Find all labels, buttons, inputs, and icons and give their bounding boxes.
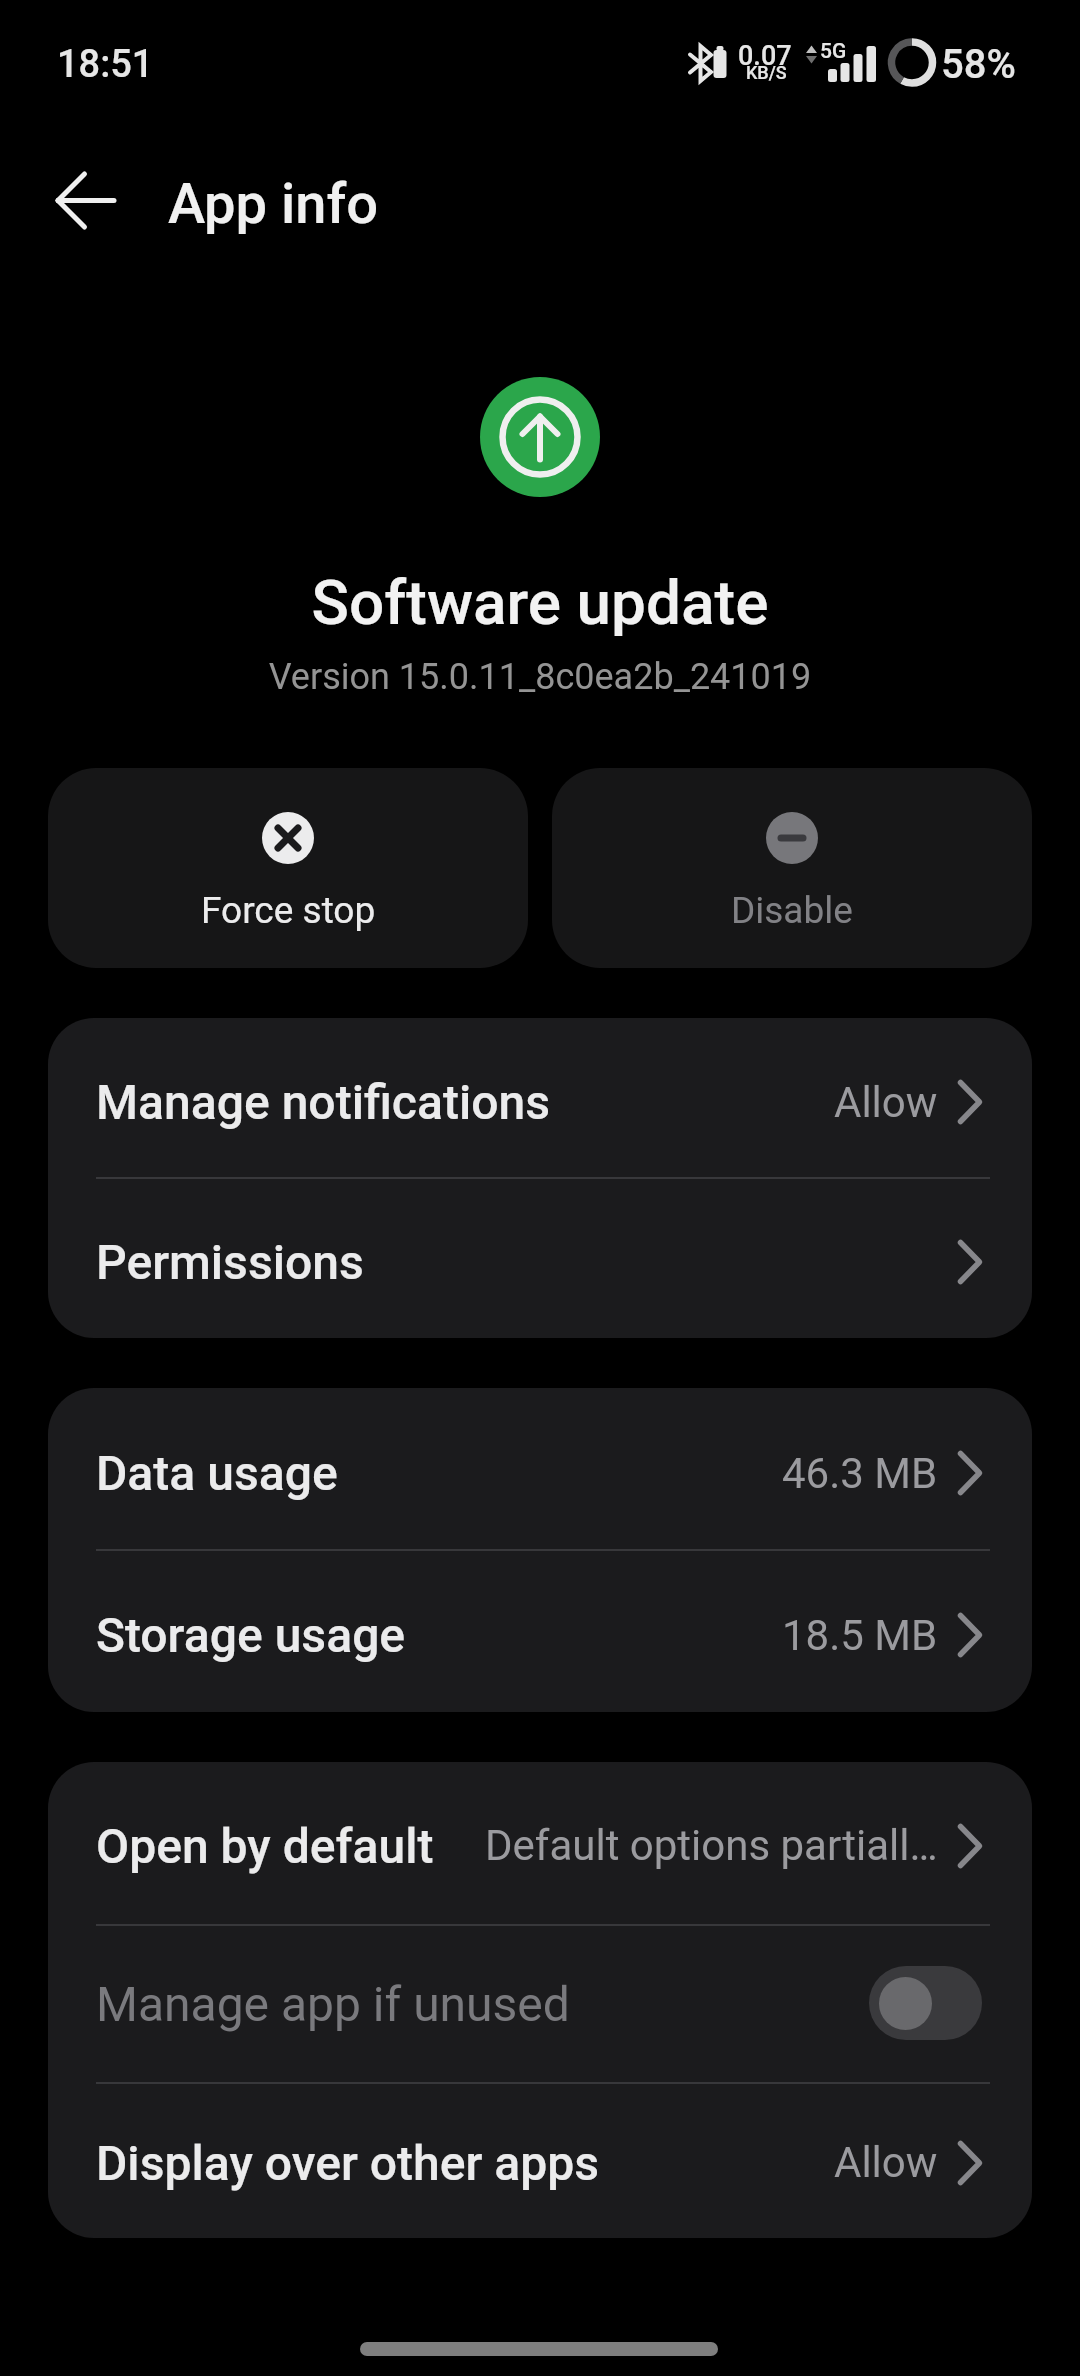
button[interactable]: Data usage (48, 1388, 1032, 1550)
staticText: Software update (0, 566, 1080, 639)
button[interactable]: Display over other apps (48, 2079, 1032, 2238)
staticText: Data usage (96, 1445, 338, 1501)
button[interactable] (36, 158, 136, 244)
staticText: 18:51 (57, 42, 154, 87)
button[interactable]: Open by default (48, 1762, 1032, 1921)
staticText: Disable (731, 889, 853, 932)
button[interactable]: Disable (552, 768, 1032, 968)
staticText: 18.5 MB (782, 1611, 938, 1660)
staticText: 58% (941, 41, 1016, 88)
staticText: Manage app if unused (96, 1976, 570, 2032)
staticText: App info (168, 171, 379, 237)
button[interactable]: Force stop (48, 768, 528, 968)
button[interactable]: Permissions (48, 1178, 1032, 1338)
staticText: 0.07 (738, 40, 792, 72)
staticText: Manage notifications (96, 1074, 551, 1130)
staticText: KB/S (746, 62, 787, 83)
staticText: Open by default (96, 1818, 434, 1874)
staticText: Allow (834, 1078, 938, 1127)
staticText: Version 15.0.11_8c0ea2b_241019 (0, 656, 1080, 698)
staticText: Force stop (201, 889, 376, 932)
button[interactable]: Manage app if unused (48, 1921, 1032, 2079)
staticText: Storage usage (96, 1607, 406, 1663)
staticText: Default options partiall… (485, 1821, 938, 1870)
staticText: 5G (820, 39, 847, 64)
staticText: Display over other apps (96, 2135, 600, 2191)
staticText: 46.3 MB (782, 1449, 938, 1498)
button[interactable]: Manage notifications (48, 1018, 1032, 1178)
button[interactable]: Storage usage (48, 1550, 1032, 1712)
staticText: Permissions (96, 1234, 364, 1290)
staticText: Allow (834, 2138, 938, 2187)
